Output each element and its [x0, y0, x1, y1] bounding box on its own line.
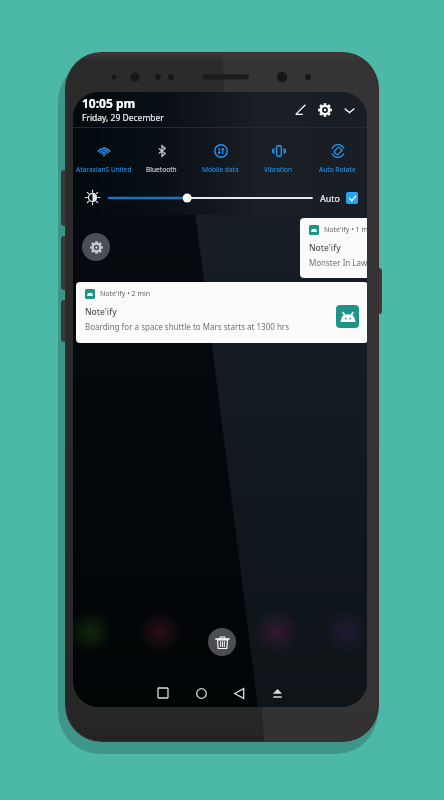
staticText: Boarding for a space shuttle to Mars sta… — [85, 321, 289, 332]
button[interactable]: AtaraxianS United — [75, 144, 132, 174]
button[interactable]: Note'ify • 2 min — [76, 282, 367, 343]
staticText: Bluetooth — [146, 165, 177, 174]
staticText: Note'ify • 2 min — [100, 289, 151, 299]
staticText: 10:05 pm — [82, 95, 136, 111]
staticText: Monster In Law... — [309, 257, 367, 268]
button[interactable]: Vibration — [250, 144, 307, 174]
button[interactable]: Clear all notifications — [208, 628, 236, 656]
button[interactable]: Hide keyboard — [258, 679, 296, 707]
button[interactable]: Auto brightness — [346, 192, 358, 204]
staticText: Auto Rotate — [319, 165, 356, 174]
button[interactable]: Bluetooth — [133, 144, 190, 174]
staticText: Note'ify — [309, 242, 341, 254]
button[interactable]: Edit — [289, 98, 313, 122]
staticText: Friday, 29 December — [82, 112, 164, 124]
button[interactable]: Note'ify • 1 min — [300, 218, 367, 278]
button[interactable]: Back — [220, 679, 258, 707]
button[interactable]: Home — [182, 679, 220, 707]
staticText: Auto — [320, 192, 341, 204]
button[interactable]: Notification settings — [82, 233, 110, 261]
staticText: Note'ify • 1 min — [324, 225, 367, 235]
staticText: Note'ify — [85, 306, 117, 318]
button[interactable]: Auto Rotate — [309, 144, 366, 174]
staticText: Mobile data — [202, 165, 239, 174]
staticText: AtaraxianS United — [76, 165, 132, 174]
button[interactable]: Recents — [144, 679, 182, 707]
button[interactable]: Expand — [337, 98, 361, 122]
button[interactable]: Settings — [313, 98, 337, 122]
button[interactable]: Mobile data — [192, 144, 249, 174]
staticText: Vibration — [264, 165, 293, 174]
